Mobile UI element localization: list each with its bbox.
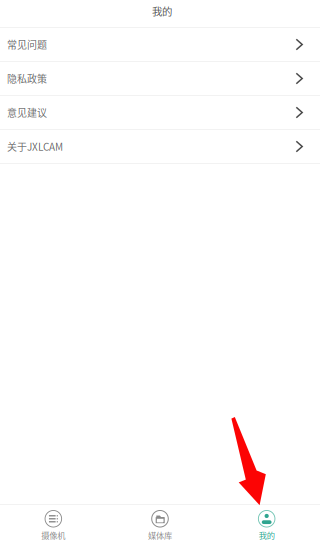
button[interactable]: 隐私政策 [0,62,320,95]
button[interactable]: 摄像机 [0,505,107,545]
staticText: 常见问题 [7,37,47,52]
staticText: 媒体库 [148,529,172,541]
button[interactable]: 关于JXLCAM [0,130,320,163]
staticText: 关于JXLCAM [7,139,63,154]
button[interactable]: 常见问题 [0,28,320,61]
staticText: 我的 [152,3,172,19]
staticText: 摄像机 [41,529,65,541]
staticText: 我的 [259,529,275,541]
staticText: 意见建议 [7,105,47,120]
staticText: 隐私政策 [7,71,47,86]
button[interactable]: 我的 [213,505,320,545]
button[interactable]: 媒体库 [107,505,213,545]
button[interactable]: 意见建议 [0,96,320,129]
